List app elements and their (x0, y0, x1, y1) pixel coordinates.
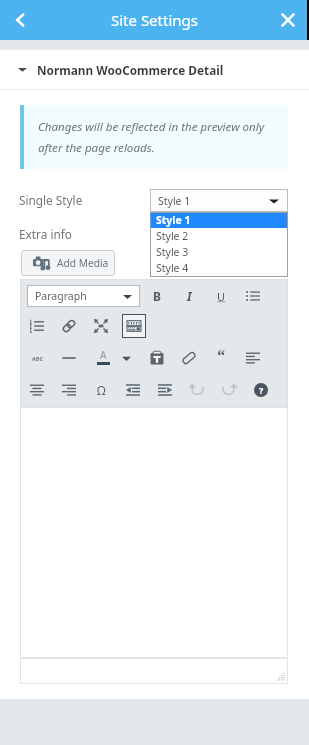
button[interactable]: Add Media (21, 250, 115, 276)
button[interactable]: Blockquote (209, 343, 233, 367)
staticText: Add Media (57, 256, 109, 270)
staticText: Site Settings (111, 10, 198, 30)
staticText: Style 2 (156, 229, 189, 243)
button[interactable]: Horizontal line (57, 346, 81, 370)
staticText: ABC (32, 355, 43, 362)
button[interactable]: Text color (91, 346, 115, 370)
staticText: A (100, 348, 107, 362)
button[interactable]: Bold (145, 284, 169, 308)
button[interactable]: Redo (217, 378, 241, 402)
button[interactable]: Text color options (114, 346, 138, 370)
button[interactable]: Underline (209, 284, 233, 308)
button[interactable]: Clear formatting (177, 346, 201, 370)
staticText: Style 1 (158, 194, 191, 208)
button[interactable]: Style 4 (150, 260, 288, 276)
button[interactable]: Style 1 (150, 212, 288, 228)
button[interactable]: Insert link (57, 314, 81, 338)
staticText: B (153, 288, 161, 304)
button[interactable]: Italic (177, 284, 201, 308)
button[interactable]: Special character (89, 378, 113, 402)
button[interactable]: Bulleted list (241, 284, 265, 308)
staticText: Changes will be reflected in the preview… (38, 119, 265, 155)
staticText: Ω (97, 382, 106, 398)
staticText: Single Style (19, 192, 83, 208)
staticText: Style 4 (156, 261, 189, 275)
button[interactable]: Align left (241, 346, 265, 370)
button[interactable]: Style 2 (150, 228, 288, 244)
button[interactable]: Undo (185, 378, 209, 402)
staticText: I (187, 288, 192, 304)
button[interactable]: Paragraph (27, 285, 140, 307)
staticText: Style 3 (156, 245, 189, 259)
staticText: Normann WooCommerce Detail (37, 62, 224, 78)
button[interactable]: Back (0, 0, 40, 40)
staticText: Extra info (19, 226, 72, 242)
button[interactable]: Increase indent (153, 378, 177, 402)
button[interactable]: Close (268, 0, 308, 40)
staticText: U (217, 289, 226, 304)
button[interactable]: Keyboard shortcuts (249, 378, 273, 402)
button[interactable]: Toolbar toggle (122, 314, 146, 338)
button[interactable]: Strikethrough (25, 346, 49, 370)
button[interactable]: Style 1 (150, 189, 288, 212)
button[interactable]: Normann WooCommerce Detail (0, 50, 309, 89)
button[interactable]: Numbered list (25, 314, 49, 338)
button[interactable]: Fullscreen (89, 314, 113, 338)
button[interactable]: Decrease indent (121, 378, 145, 402)
button[interactable]: Align right (57, 378, 81, 402)
staticText: “ (217, 344, 226, 367)
button[interactable]: Align center (25, 378, 49, 402)
staticText: Style 1 (156, 213, 191, 227)
staticText: Paragraph (35, 289, 87, 303)
button[interactable]: Paste as text (145, 346, 169, 370)
staticText: ? (259, 384, 264, 396)
button[interactable]: Style 3 (150, 244, 288, 260)
